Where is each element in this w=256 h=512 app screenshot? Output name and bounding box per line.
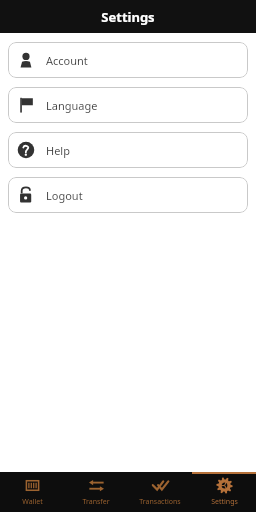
staticText: Settings <box>211 497 238 507</box>
button[interactable]: Settings <box>192 472 256 512</box>
button[interactable]: Language <box>8 87 248 123</box>
staticText: Transactions <box>139 497 181 507</box>
staticText: Help <box>46 143 70 158</box>
staticText: Language <box>46 98 98 113</box>
button[interactable]: Help <box>8 132 248 168</box>
button[interactable]: Transactions <box>128 472 192 512</box>
staticText: Transfer <box>82 497 110 507</box>
button[interactable]: Account <box>8 42 248 78</box>
staticText: Account <box>46 53 88 68</box>
staticText: Settings <box>101 8 155 26</box>
button[interactable]: Wallet <box>0 472 64 512</box>
button[interactable]: Transfer <box>64 472 128 512</box>
staticText: Wallet <box>22 497 43 507</box>
button[interactable]: Logout <box>8 177 248 213</box>
staticText: Logout <box>46 188 83 203</box>
